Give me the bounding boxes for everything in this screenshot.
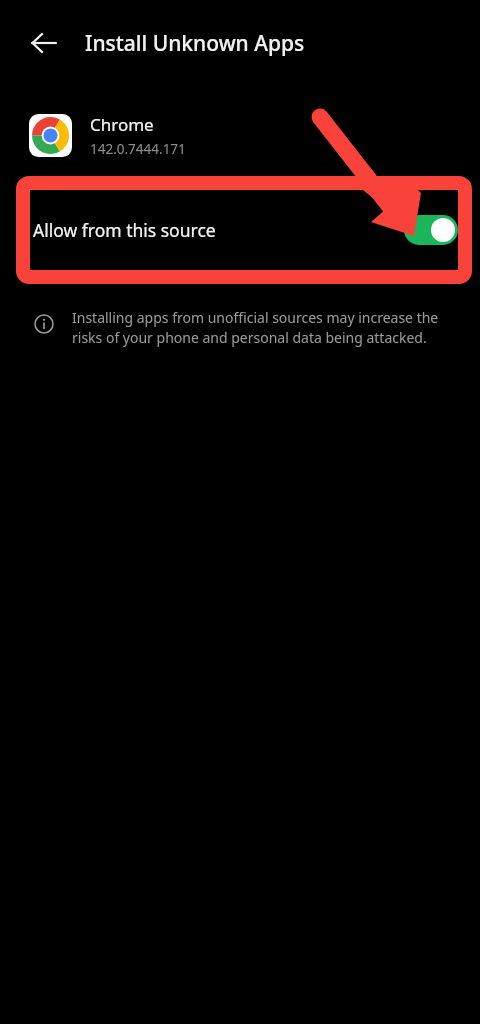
button[interactable]: Allow from this source — [30, 190, 458, 270]
staticText: Install Unknown Apps — [85, 29, 305, 58]
button[interactable]: Back — [22, 21, 66, 65]
button[interactable]: Chrome — [0, 104, 480, 166]
staticText: Installing apps from unofficial sources … — [72, 308, 452, 347]
staticText: 142.0.7444.171 — [90, 140, 186, 158]
staticText: Chrome — [90, 113, 154, 136]
staticText: Allow from this source — [33, 218, 216, 242]
